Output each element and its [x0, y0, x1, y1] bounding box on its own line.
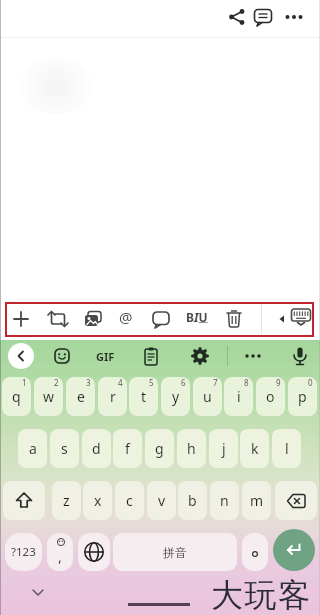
staticText: l	[285, 439, 289, 458]
button[interactable]: h	[177, 429, 206, 468]
staticText: 9	[276, 377, 281, 388]
button[interactable]: ?123	[5, 533, 42, 571]
button[interactable]	[251, 5, 275, 29]
button[interactable]	[78, 533, 110, 571]
button[interactable]: p	[288, 377, 317, 416]
staticText: u	[203, 387, 212, 406]
button[interactable]: z	[52, 481, 81, 520]
button[interactable]	[137, 342, 165, 370]
staticText: p	[298, 387, 307, 406]
button[interactable]: e	[66, 377, 95, 416]
button[interactable]	[3, 481, 45, 520]
button[interactable]: j	[209, 429, 238, 468]
button[interactable]	[286, 342, 314, 370]
button[interactable]	[225, 5, 249, 29]
button[interactable]	[242, 533, 268, 571]
button[interactable]: v	[147, 481, 176, 520]
button[interactable]: g	[145, 429, 174, 468]
staticText: f	[125, 439, 130, 458]
staticText: ?123	[11, 544, 36, 560]
button[interactable]	[30, 586, 46, 598]
staticText: v	[158, 491, 166, 510]
button[interactable]	[73, 299, 113, 334]
button[interactable]	[141, 299, 181, 334]
button[interactable]: c	[115, 481, 144, 520]
staticText: a	[29, 439, 37, 458]
staticText: x	[94, 491, 102, 510]
staticText: 拼音	[163, 545, 187, 560]
staticText: 0	[308, 377, 313, 388]
staticText: g	[155, 439, 164, 458]
button[interactable]: d	[82, 429, 111, 468]
button[interactable]: s	[50, 429, 79, 468]
button[interactable]	[48, 342, 76, 370]
button[interactable]: m	[242, 481, 271, 520]
button[interactable]: @	[106, 299, 146, 334]
staticText: c	[126, 491, 133, 510]
button[interactable]	[282, 5, 306, 29]
button[interactable]: n	[210, 481, 239, 520]
staticText: 大玩客	[211, 575, 312, 615]
button[interactable]: i	[224, 377, 253, 416]
button[interactable]	[214, 299, 254, 334]
button[interactable]: 拼音	[113, 533, 237, 571]
button[interactable]	[1, 299, 41, 334]
button[interactable]: f	[113, 429, 142, 468]
button[interactable]	[273, 529, 315, 571]
button[interactable]: ,	[47, 533, 73, 571]
staticText: 5	[149, 377, 154, 388]
button[interactable]: BIU	[177, 299, 217, 334]
staticText: j	[222, 439, 226, 458]
staticText: 7	[213, 377, 218, 388]
staticText: r	[110, 387, 116, 406]
button[interactable]: b	[178, 481, 207, 520]
staticText: 3	[86, 377, 91, 388]
staticText: 1	[22, 377, 27, 388]
button[interactable]: GIF	[96, 349, 115, 364]
staticText: h	[187, 439, 196, 458]
button[interactable]	[8, 343, 34, 369]
button[interactable]	[275, 481, 317, 520]
button[interactable]	[274, 311, 290, 327]
staticText: n	[220, 491, 229, 510]
button[interactable]: x	[83, 481, 112, 520]
button[interactable]: k	[240, 429, 269, 468]
staticText: b	[188, 491, 197, 510]
staticText: 6	[181, 377, 186, 388]
staticText: 2	[54, 377, 59, 388]
button[interactable]: w	[34, 377, 63, 416]
staticText: d	[92, 439, 101, 458]
button[interactable]: a	[18, 429, 47, 468]
staticText: o	[266, 387, 275, 406]
staticText: @	[119, 307, 133, 327]
button[interactable]: o	[256, 377, 285, 416]
staticText: w	[43, 387, 55, 406]
staticText: 8	[244, 377, 249, 388]
button[interactable]: u	[193, 377, 222, 416]
staticText: q	[12, 387, 21, 406]
button[interactable]: r	[98, 377, 127, 416]
button[interactable]	[38, 299, 78, 334]
staticText: z	[63, 491, 70, 510]
staticText: y	[172, 387, 180, 406]
staticText: 4	[118, 377, 123, 388]
staticText: BIU	[186, 309, 208, 325]
button[interactable]	[239, 342, 267, 370]
button[interactable]	[281, 299, 320, 334]
button[interactable]: y	[161, 377, 190, 416]
staticText: m	[250, 491, 264, 510]
staticText: s	[61, 439, 68, 458]
button[interactable]: l	[272, 429, 301, 468]
button[interactable]: q	[2, 377, 31, 416]
staticText: ,	[58, 547, 62, 566]
staticText: t	[141, 387, 147, 406]
staticText: k	[251, 439, 259, 458]
button[interactable]: t	[129, 377, 158, 416]
staticText: i	[237, 387, 241, 406]
button[interactable]	[186, 342, 214, 370]
staticText: e	[77, 387, 85, 406]
